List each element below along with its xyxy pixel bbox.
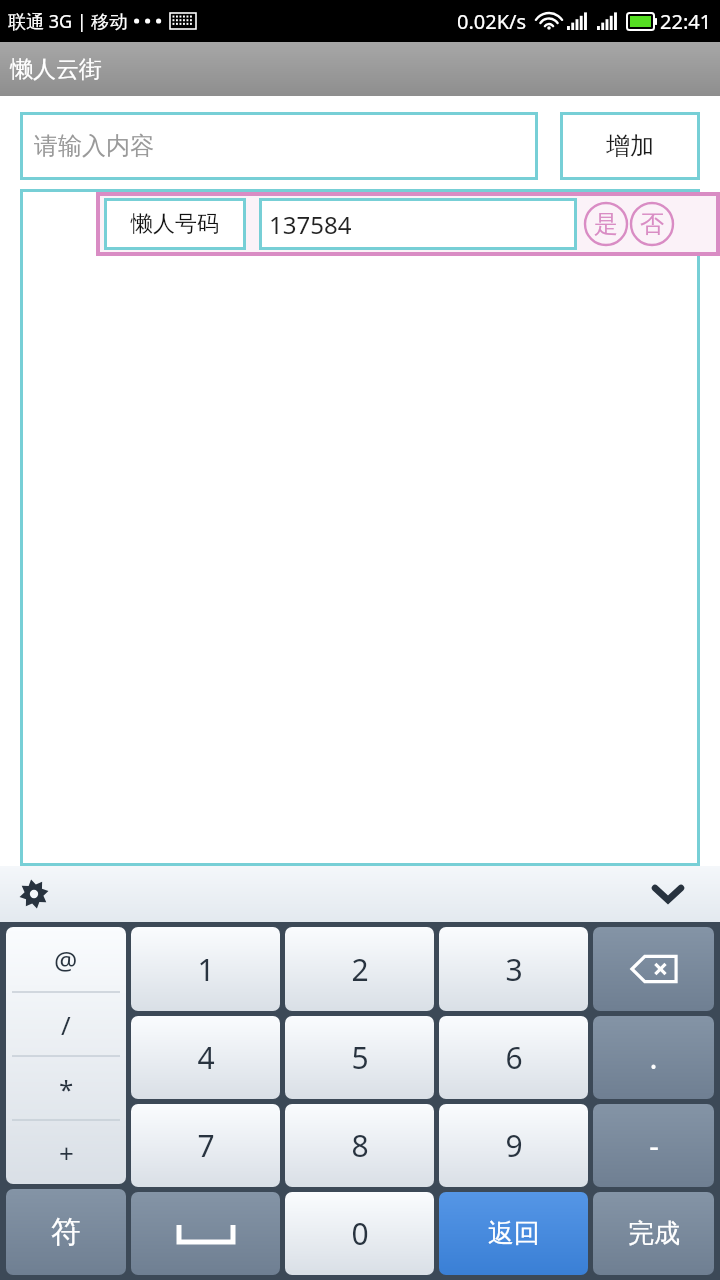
staticText: . [649,1037,658,1078]
staticText: 联通 3G | 移动 [8,9,128,34]
staticText: 4 [197,1037,215,1078]
button[interactable]: 是 [583,201,629,247]
button[interactable]: Backspace [593,927,714,1011]
staticText: 完成 [628,1217,680,1250]
staticText: 7 [197,1125,215,1166]
staticText: 是 [594,209,618,239]
staticText: 2 [351,949,369,990]
staticText: 6 [505,1037,523,1078]
staticText: 9 [505,1125,523,1166]
staticText: 懒人云街 [10,55,102,84]
button[interactable]: 7 [131,1104,280,1187]
button[interactable]: 9 [439,1104,588,1187]
staticText: 符 [51,1213,81,1251]
button[interactable]: 8 [285,1104,434,1187]
staticText: / [61,1007,71,1042]
staticText: 否 [640,209,664,239]
button[interactable]: Keyboard settings [12,872,56,916]
staticText: 8 [351,1125,369,1166]
staticText: 5 [351,1037,369,1078]
button[interactable]: . [593,1016,714,1099]
staticText: 3 [505,949,523,990]
button[interactable]: 4 [131,1016,280,1099]
staticText: 增加 [606,131,654,161]
button[interactable]: 完成 [593,1192,714,1275]
button[interactable]: - [593,1104,714,1187]
button[interactable]: 增加 [560,112,700,180]
staticText: 1 [197,949,215,990]
button[interactable]: 6 [439,1016,588,1099]
staticText: + [59,1135,74,1170]
staticText: - [649,1125,659,1166]
button[interactable]: @ [6,927,126,1184]
staticText: 返回 [488,1217,540,1250]
staticText: 0 [351,1213,369,1254]
button[interactable]: 0 [285,1192,434,1275]
button[interactable]: 符 [6,1189,126,1275]
button[interactable]: 懒人号码 [96,192,720,256]
button[interactable]: 请输入内容 [20,112,538,180]
button[interactable]: Hide keyboard [646,872,690,916]
button[interactable]: 2 [285,927,434,1011]
staticText: 22:41 [660,8,712,35]
button[interactable]: 否 [629,201,675,247]
staticText: 懒人号码 [131,210,219,238]
button[interactable]: 返回 [439,1192,588,1275]
button[interactable]: 3 [439,927,588,1011]
button[interactable]: 1 [131,927,280,1011]
staticText: 137584 [269,208,352,241]
staticText: @ [54,942,78,977]
staticText: 请输入内容 [34,131,154,161]
button[interactable]: Space [131,1192,280,1275]
staticText: * [59,1071,74,1106]
staticText: 0.02K/s [457,8,527,35]
button[interactable]: 5 [285,1016,434,1099]
